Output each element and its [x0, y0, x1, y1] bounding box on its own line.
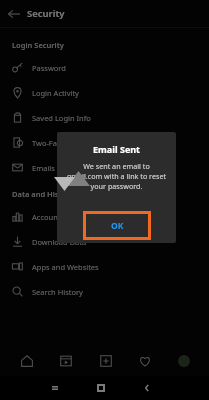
staticText: Password [32, 63, 66, 73]
staticText: Security [27, 7, 65, 20]
button[interactable]: Profile [172, 349, 196, 373]
button[interactable]: Download Data [0, 229, 209, 254]
staticText: Two-Factor Authentication [32, 138, 125, 148]
staticText: Emails from Instagram [32, 163, 113, 173]
button[interactable]: Emails from Instagram [0, 155, 209, 180]
staticText: Email Sent [93, 143, 141, 155]
staticText: OK [111, 220, 124, 232]
staticText: Data and History [12, 189, 74, 199]
button[interactable]: Home [14, 348, 40, 374]
staticText: Saved Login Info [32, 113, 91, 123]
button[interactable]: Reels [53, 348, 79, 374]
button[interactable]: Recents [42, 376, 68, 400]
button[interactable]: Login Activity [0, 80, 209, 105]
staticText: Apps and Websites [32, 262, 99, 272]
staticText: Login Activity [32, 88, 79, 98]
button[interactable]: Search History [0, 279, 209, 304]
button[interactable]: Activity [132, 348, 158, 374]
button[interactable]: Account Data [0, 204, 209, 229]
button[interactable]: OK [86, 214, 148, 237]
staticText: Login Security [12, 40, 64, 50]
staticText: Download Data [32, 237, 87, 247]
button[interactable]: Create [93, 348, 119, 374]
button[interactable]: Password [0, 55, 209, 80]
staticText: Account Data [32, 212, 80, 222]
button[interactable]: Home [88, 376, 114, 400]
staticText: We sent an email to gmail.com with a lin… [65, 161, 168, 191]
button[interactable]: Two-Factor Authentication [0, 130, 209, 155]
staticText: Search History [32, 287, 83, 297]
button[interactable]: Apps and Websites [0, 254, 209, 279]
button[interactable]: Back [0, 0, 27, 27]
button[interactable]: Saved Login Info [0, 105, 209, 130]
button[interactable]: Back [134, 376, 160, 400]
